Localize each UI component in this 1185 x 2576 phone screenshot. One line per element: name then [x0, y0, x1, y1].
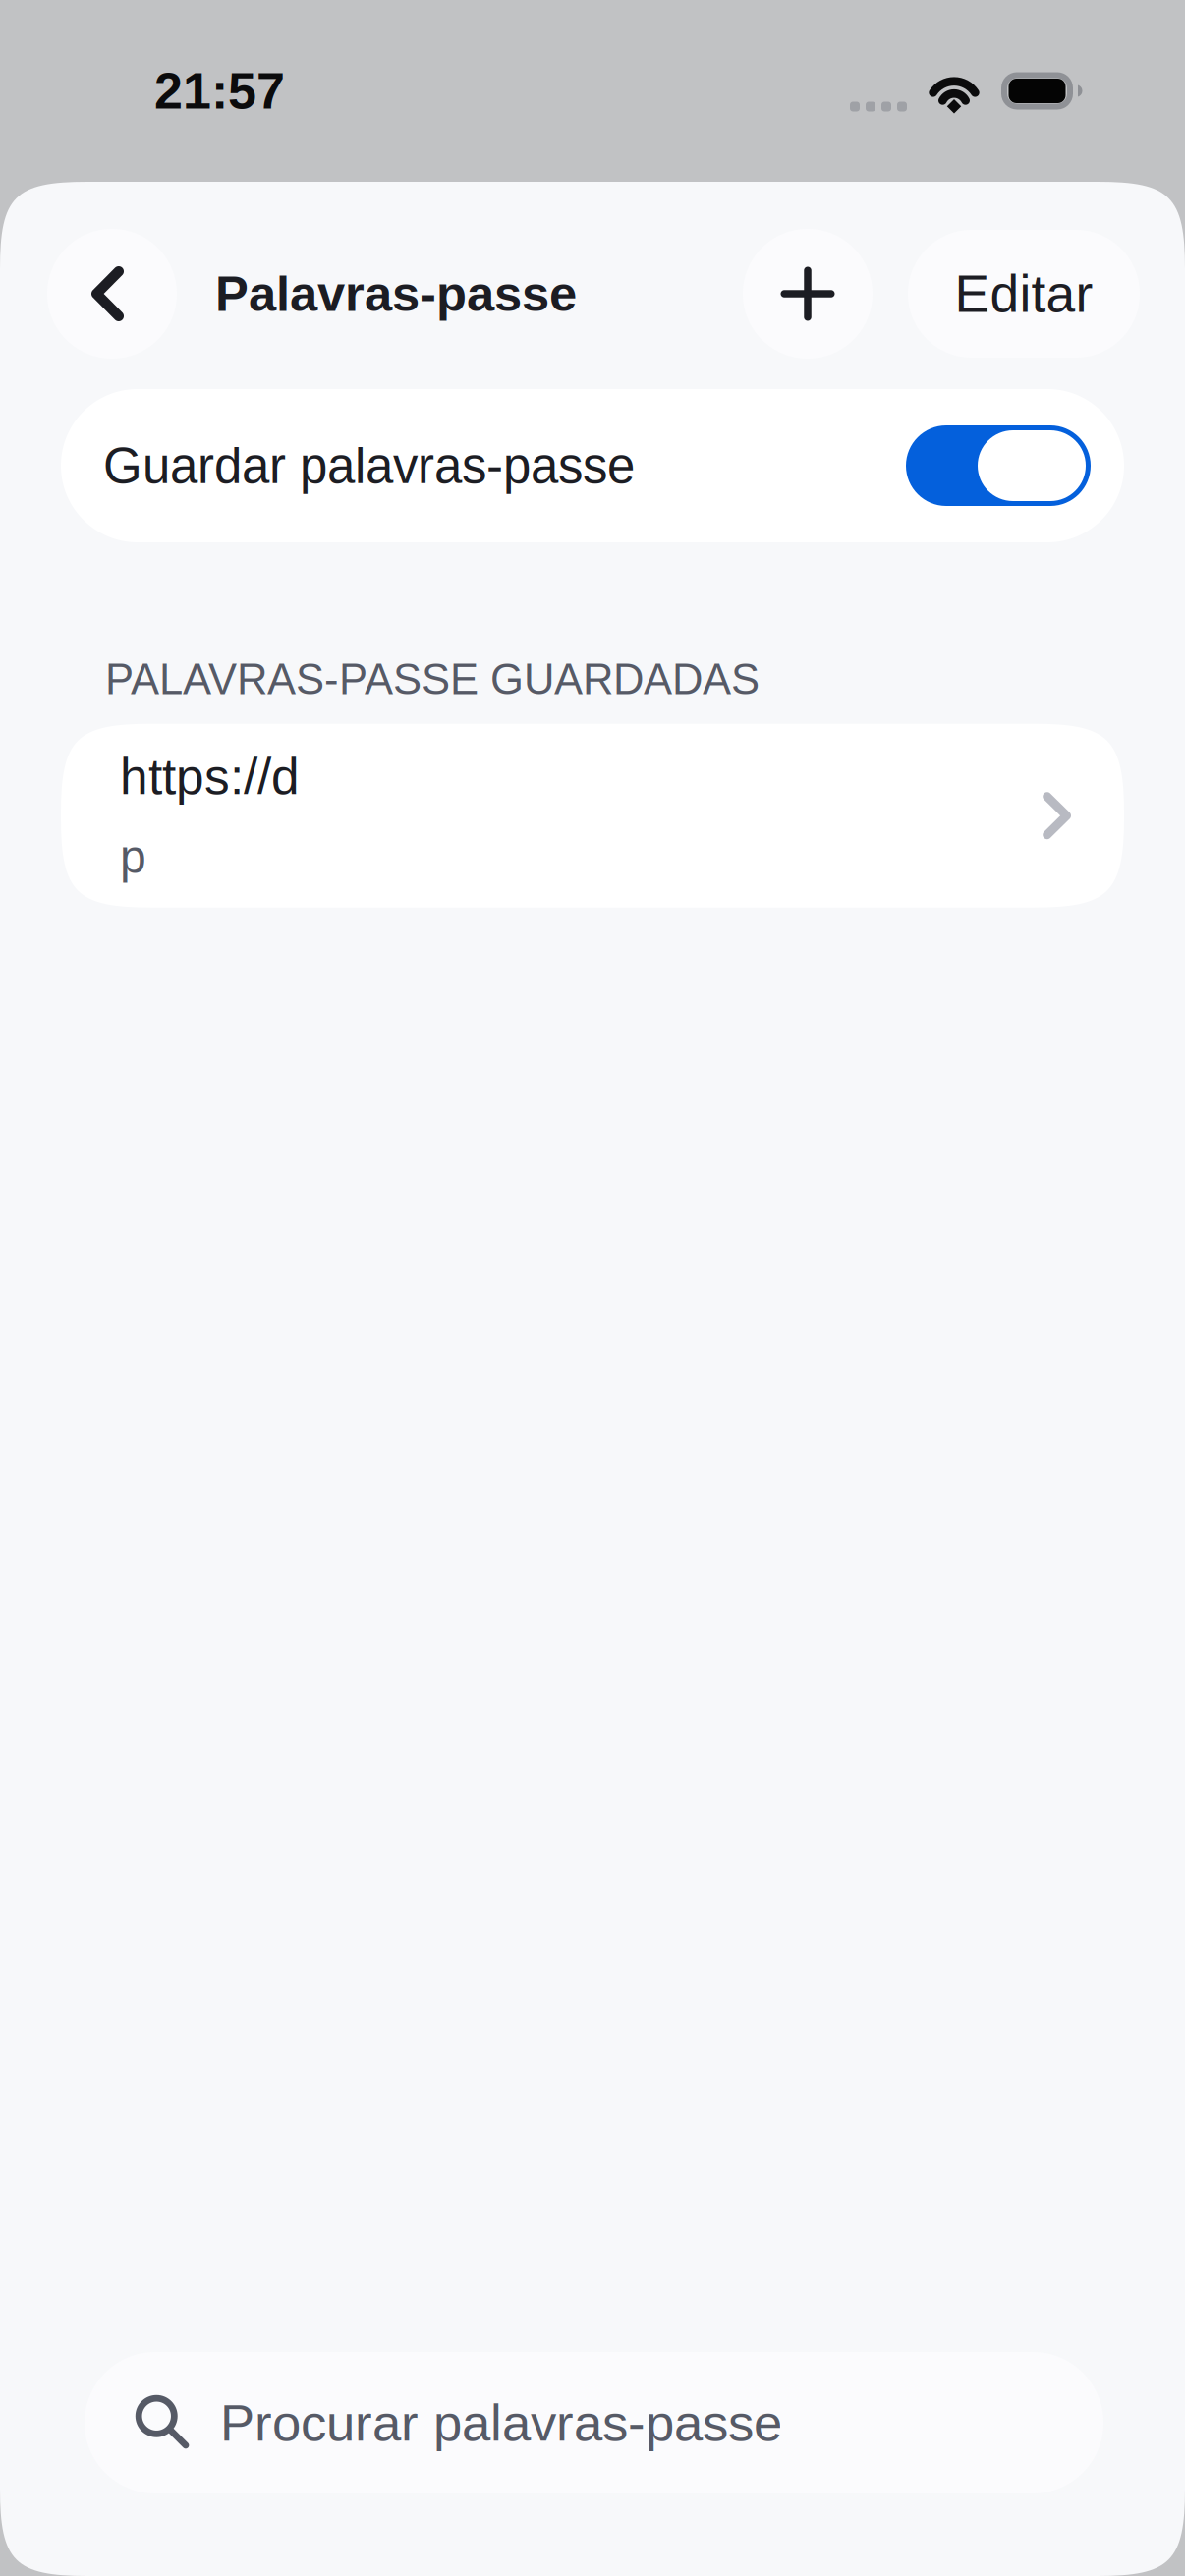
- staticText: Guardar palavras-passe: [103, 438, 635, 494]
- button[interactable]: https://d: [61, 724, 1124, 907]
- staticText: 21:57: [154, 62, 285, 119]
- staticText: p: [120, 830, 146, 883]
- staticText: Editar: [955, 264, 1093, 323]
- staticText: Palavras-passe: [215, 266, 577, 322]
- button[interactable]: Procurar palavras-passe: [85, 2352, 1103, 2493]
- staticText: Procurar palavras-passe: [220, 2394, 782, 2452]
- button[interactable]: Adicionar palavra-passe: [743, 229, 873, 359]
- staticText: PALAVRAS-PASSE GUARDADAS: [105, 655, 760, 703]
- button[interactable]: Voltar: [47, 229, 177, 359]
- button[interactable]: Editar: [908, 230, 1140, 358]
- staticText: https://d: [120, 748, 300, 805]
